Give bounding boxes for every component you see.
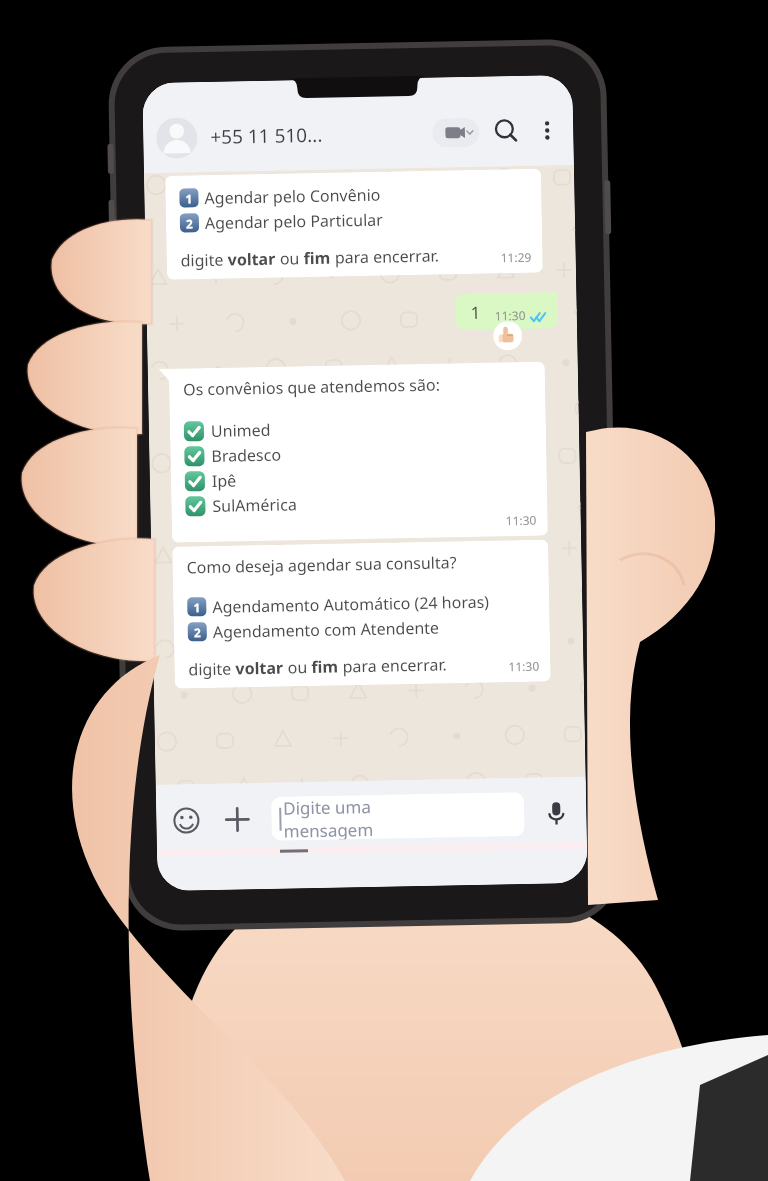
staticText: SulAmérica xyxy=(212,493,298,517)
button[interactable]: Contact profile xyxy=(156,117,198,159)
staticText: Agendar pelo Convênio xyxy=(204,184,381,209)
staticText: ou xyxy=(283,656,312,679)
staticText: Como deseja agendar sua consulta? xyxy=(186,551,458,578)
staticText: Agendamento Automático (24 horas) xyxy=(212,591,489,618)
staticText: digite xyxy=(180,249,228,271)
staticText: ou xyxy=(275,247,304,270)
staticText: fim xyxy=(311,655,339,678)
staticText: fim xyxy=(303,247,331,269)
staticText: 11:29 xyxy=(500,249,532,265)
button[interactable]: Voice message xyxy=(541,798,572,829)
button[interactable]: 1 xyxy=(165,169,543,280)
button[interactable]: Emoji xyxy=(171,805,202,836)
button[interactable]: +55 11 510... xyxy=(210,122,323,150)
staticText: Agendar pelo Particular xyxy=(205,209,383,234)
button[interactable]: 1 xyxy=(455,292,558,330)
staticText: Unimed xyxy=(211,419,271,442)
staticText: 11:30 xyxy=(508,658,540,674)
staticText: para encerrar. xyxy=(330,244,440,269)
staticText: 2 xyxy=(186,215,193,231)
staticText: Agendamento com Atendente xyxy=(213,617,440,643)
button[interactable]: More options xyxy=(536,119,558,142)
button[interactable]: Attach xyxy=(222,804,253,835)
button[interactable]: Search xyxy=(492,117,522,146)
staticText: 1 xyxy=(193,599,200,615)
button[interactable]: Thumbs up reaction xyxy=(493,321,522,351)
staticText: Digite uma mensagem xyxy=(283,795,374,841)
button[interactable]: Video call xyxy=(432,118,479,148)
button[interactable]: Como deseja agendar sua consulta? xyxy=(172,539,551,689)
staticText: voltar xyxy=(227,248,276,271)
staticText: 11:30 xyxy=(506,512,537,528)
staticText: voltar xyxy=(235,657,284,679)
staticText: +55 11 510... xyxy=(210,122,323,150)
staticText: 2 xyxy=(194,624,201,640)
staticText: 11:30 xyxy=(495,307,526,323)
staticText: 1 xyxy=(470,301,481,324)
staticText: Ipê xyxy=(212,469,237,492)
staticText: 1 xyxy=(185,190,193,206)
staticText: digite xyxy=(188,657,236,680)
button[interactable]: Os convênios que atendemos são: xyxy=(169,361,548,543)
staticText: para encerrar. xyxy=(338,653,448,678)
staticText: Os convênios que atendemos são: xyxy=(183,373,440,400)
staticText: Bradesco xyxy=(211,444,282,467)
button[interactable]: Digite uma mensagem xyxy=(271,792,525,841)
